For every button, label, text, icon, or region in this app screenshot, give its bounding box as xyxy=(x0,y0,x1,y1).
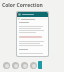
button[interactable]: Search xyxy=(17,17,48,20)
other: Search xyxy=(18,18,20,20)
button[interactable]: Color swatch xyxy=(2,61,10,69)
button[interactable]: More colors xyxy=(38,61,42,69)
button[interactable]: Color Correction xyxy=(0,0,64,11)
staticText: Color Correction xyxy=(2,2,43,9)
other: Menu xyxy=(18,13,21,16)
button[interactable]: Color swatch xyxy=(20,61,28,69)
button[interactable]: Color swatch xyxy=(11,61,19,69)
button[interactable]: Menu xyxy=(17,12,48,56)
button[interactable]: Color swatch xyxy=(29,61,37,69)
button[interactable]: Menu xyxy=(17,12,48,17)
